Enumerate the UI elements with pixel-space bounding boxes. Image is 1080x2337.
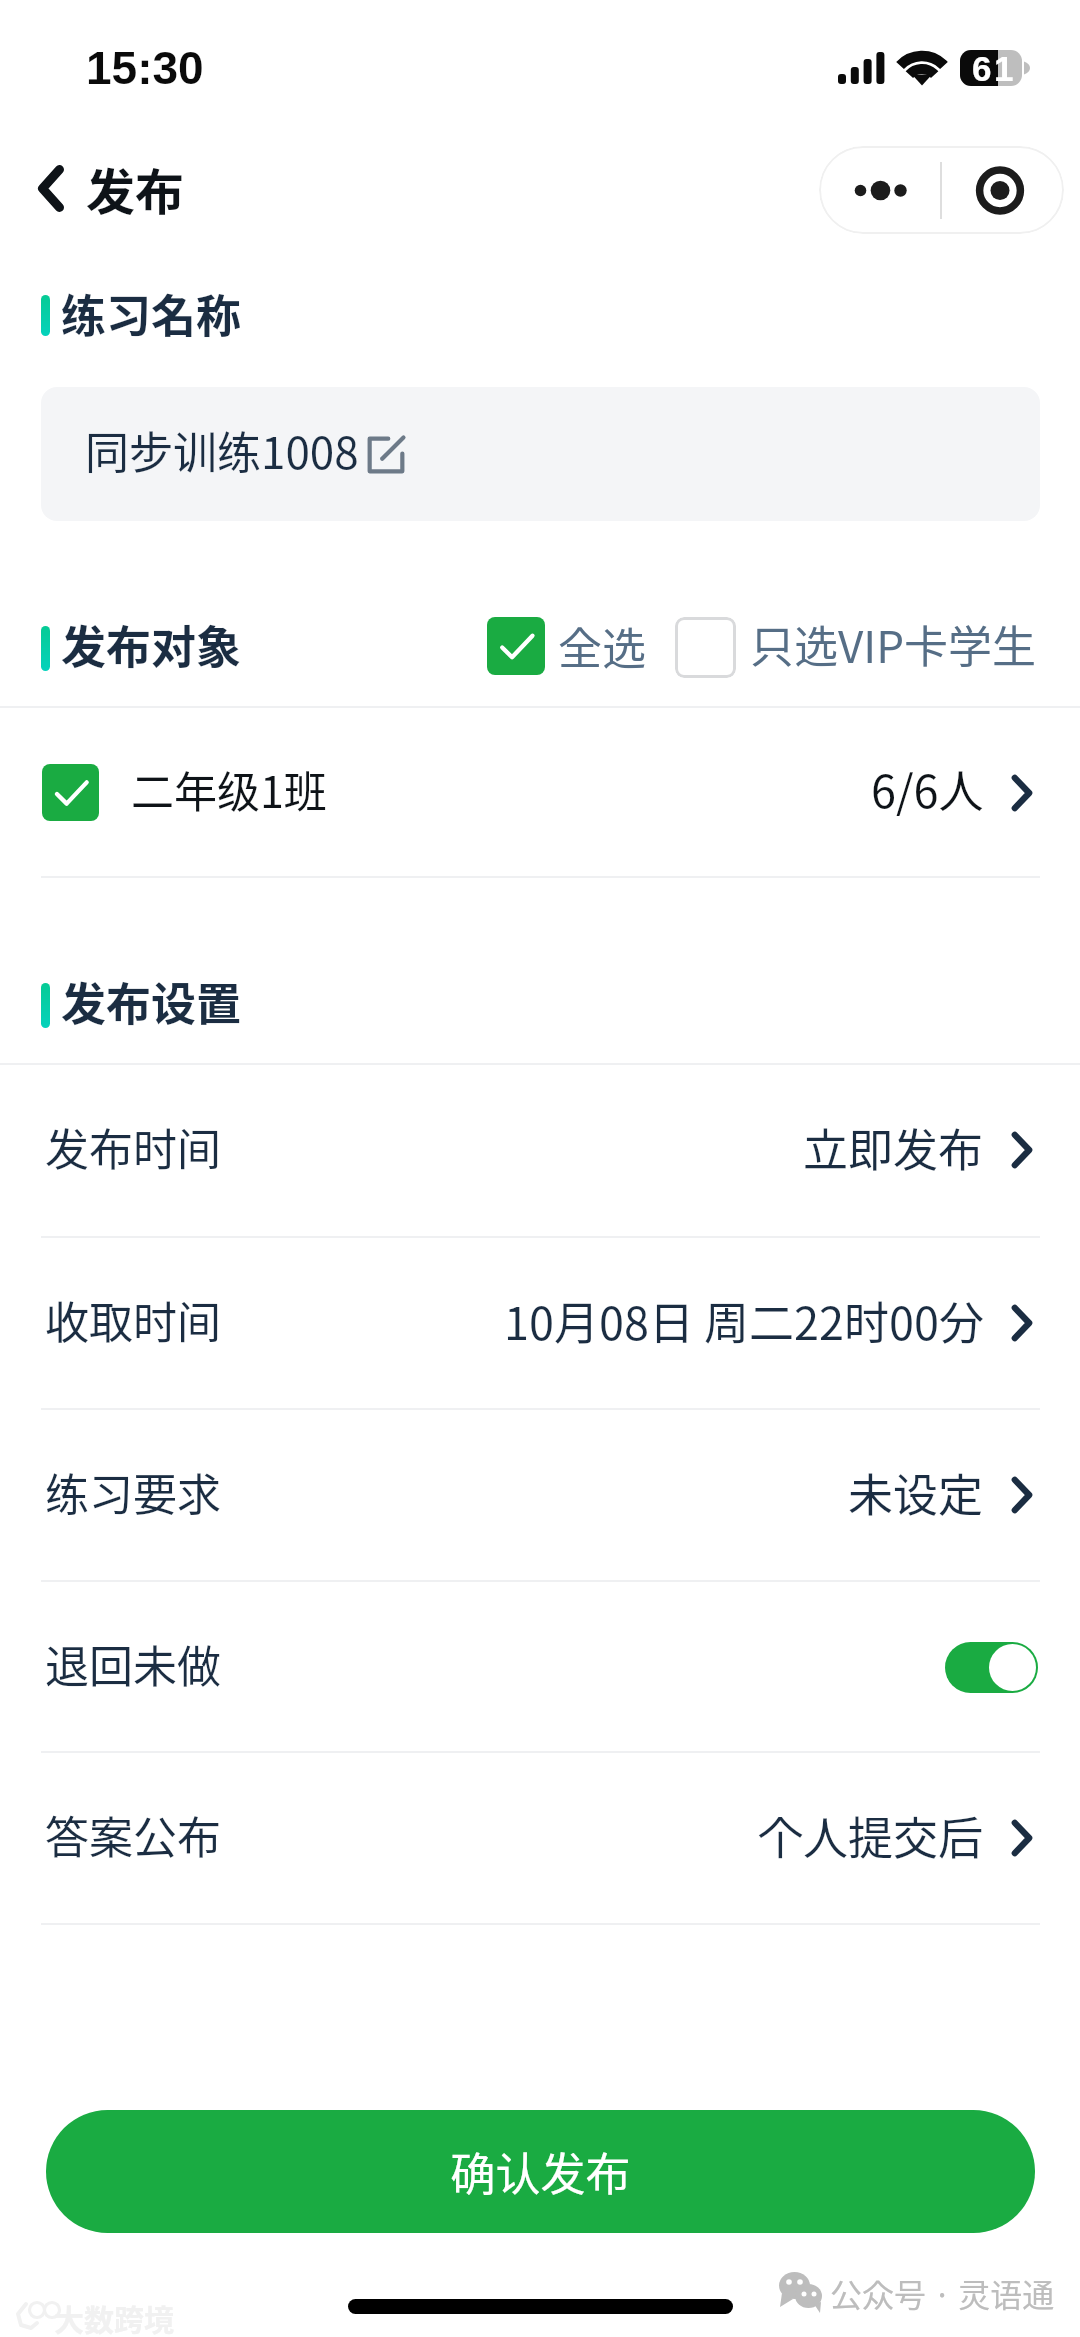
staticText: 15:30 xyxy=(86,42,204,93)
button[interactable]: 练习要求 xyxy=(0,1409,1080,1581)
staticText: 大数跨境 xyxy=(54,2296,174,2337)
staticText: 发布设置 xyxy=(61,969,242,1034)
staticText: 同步训练1008 xyxy=(85,418,359,482)
button[interactable]: 全选 xyxy=(487,606,648,686)
staticText: 61 xyxy=(972,49,1016,88)
button[interactable]: 同步训练1008 xyxy=(41,387,1040,521)
button[interactable]: 答案公布 xyxy=(0,1752,1080,1924)
staticText: 确认发布 xyxy=(450,2139,631,2204)
staticText: 10月08日 周二22时00分 xyxy=(504,1288,984,1353)
staticText: 练习名称 xyxy=(61,281,242,346)
button[interactable]: 发布时间 xyxy=(0,1064,1080,1236)
staticText: 答案公布 xyxy=(45,1803,221,1867)
button[interactable]: 关闭 xyxy=(943,146,1064,234)
staticText: 立即发布 xyxy=(803,1115,984,1180)
staticText: 只选VIP卡学生 xyxy=(750,612,1037,676)
staticText: 退回未做 xyxy=(45,1632,221,1696)
staticText: 未设定 xyxy=(848,1460,984,1525)
staticText: 二年级1班 xyxy=(131,758,327,820)
button[interactable]: 返回 xyxy=(24,145,199,232)
button[interactable]: 收取时间 xyxy=(0,1237,1080,1409)
staticText: 发布时间 xyxy=(45,1115,221,1179)
staticText: 练习要求 xyxy=(45,1460,221,1524)
button[interactable]: 更多 xyxy=(819,146,941,234)
staticText: 个人提交后 xyxy=(758,1803,984,1868)
staticText: 全选 xyxy=(558,614,646,678)
button[interactable]: 二年级1班 xyxy=(0,709,1080,876)
button[interactable]: 确认发布 xyxy=(46,2110,1035,2233)
staticText: 公众号 · 灵语通 xyxy=(830,2270,1055,2316)
staticText: 发布对象 xyxy=(61,612,242,677)
staticText: 6/6人 xyxy=(871,756,984,821)
button[interactable]: 只选VIP卡学生 xyxy=(675,607,1037,687)
staticText: 发布 xyxy=(86,153,185,224)
staticText: 收取时间 xyxy=(45,1288,221,1352)
button[interactable]: 退回未做开关 xyxy=(945,1642,1038,1693)
